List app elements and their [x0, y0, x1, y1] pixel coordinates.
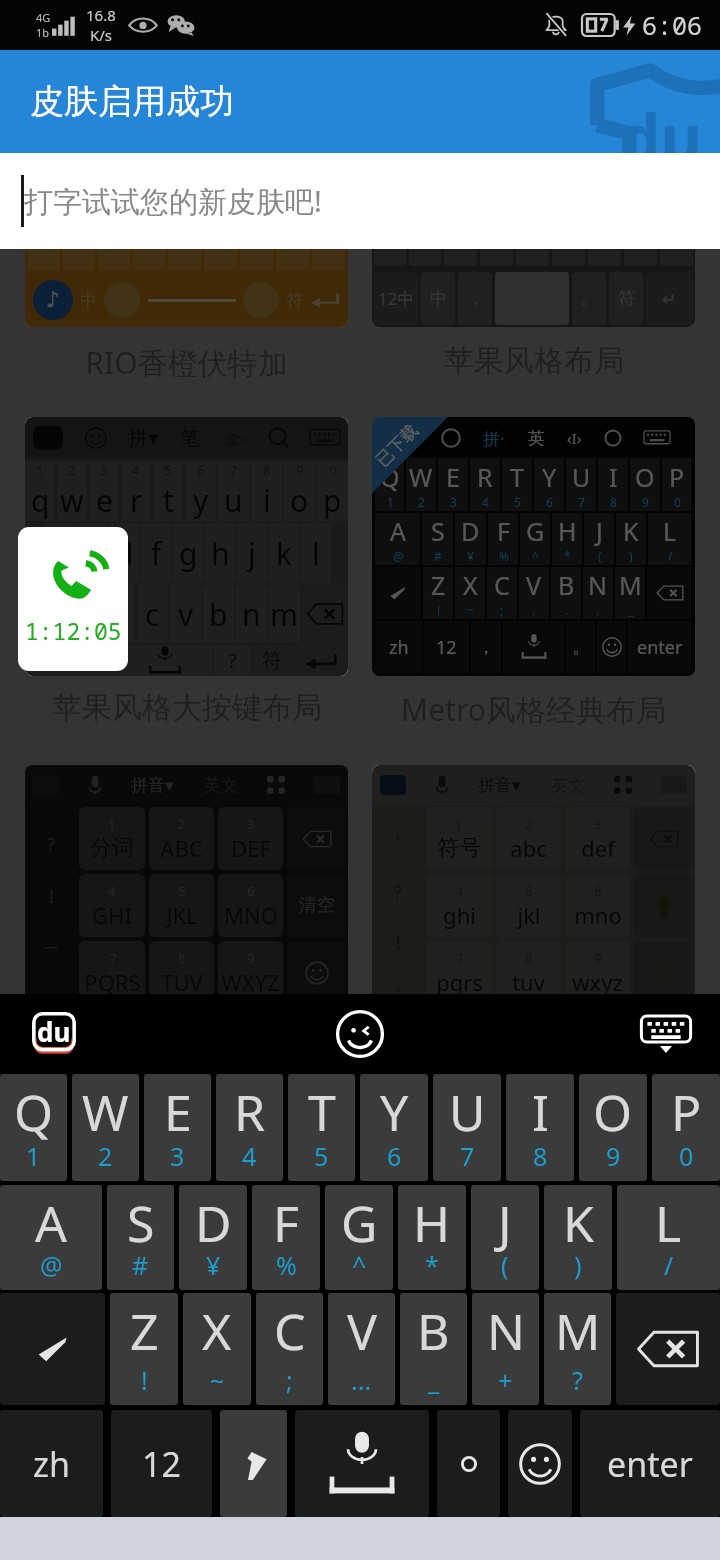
- button[interactable]: [220, 1410, 287, 1517]
- staticText: (: [501, 1248, 509, 1282]
- button[interactable]: A: [0, 1185, 102, 1290]
- button[interactable]: S: [107, 1185, 174, 1290]
- staticText: 拼音▾: [478, 775, 521, 796]
- button[interactable]: F: [252, 1185, 320, 1290]
- staticText: 拼音▾: [131, 775, 174, 796]
- staticText: R: [234, 1078, 266, 1146]
- staticText: zh: [389, 635, 409, 660]
- button[interactable]: 拼音▾: [372, 765, 695, 1024]
- staticText: 9: [296, 461, 304, 479]
- staticText: @: [40, 1248, 63, 1282]
- button[interactable]: R: [216, 1074, 283, 1181]
- staticText: H: [558, 514, 577, 548]
- button[interactable]: N: [472, 1293, 539, 1405]
- button[interactable]: D: [179, 1185, 247, 1290]
- button[interactable]: C: [256, 1293, 323, 1405]
- staticText: 4: [108, 882, 116, 900]
- button[interactable]: H: [398, 1185, 466, 1290]
- staticText: 4G: [36, 10, 51, 25]
- staticText: #: [132, 1248, 149, 1282]
- button[interactable]: 12中: [372, 236, 695, 327]
- staticText: !: [396, 930, 401, 955]
- staticText: C: [274, 1297, 306, 1365]
- staticText: JKL: [166, 900, 198, 930]
- staticText: 1:12:05: [25, 615, 122, 646]
- button[interactable]: O: [579, 1074, 647, 1181]
- button[interactable]: ♪: [25, 236, 348, 327]
- button[interactable]: G: [325, 1185, 393, 1290]
- button[interactable]: K: [544, 1185, 612, 1290]
- button[interactable]: Emoji: [332, 1006, 388, 1062]
- staticText: /: [668, 548, 673, 564]
- button[interactable]: Y: [360, 1074, 428, 1181]
- staticText: A: [35, 1189, 67, 1257]
- button[interactable]: X: [183, 1293, 251, 1405]
- staticText: l: [312, 533, 320, 574]
- button[interactable]: T: [288, 1074, 355, 1181]
- staticText: Z: [431, 568, 446, 602]
- staticText: mno: [574, 900, 622, 930]
- button[interactable]: V: [328, 1293, 395, 1405]
- staticText: Metro风格经典布局: [401, 689, 666, 730]
- staticText: —: [44, 937, 58, 956]
- button[interactable]: 拼·: [372, 417, 695, 676]
- staticText: J: [498, 1189, 512, 1257]
- staticText: 12: [142, 1441, 181, 1487]
- staticText: 。: [572, 636, 590, 659]
- staticText: 苹果风格大按键布局: [52, 689, 322, 727]
- button[interactable]: Hide keyboard: [636, 1009, 696, 1059]
- button[interactable]: U: [433, 1074, 501, 1181]
- button[interactable]: Z: [110, 1293, 178, 1405]
- button[interactable]: [616, 1293, 720, 1405]
- staticText: 符: [262, 648, 282, 673]
- button[interactable]: [0, 1293, 105, 1405]
- staticText: +: [498, 1363, 513, 1397]
- staticText: y: [193, 480, 209, 521]
- staticText: M: [619, 568, 642, 602]
- staticText: b: [209, 594, 228, 635]
- button[interactable]: [295, 1410, 429, 1517]
- button[interactable]: Baidu input menu: [30, 1011, 78, 1057]
- button[interactable]: L: [617, 1185, 720, 1290]
- staticText: def: [581, 833, 615, 863]
- button[interactable]: J: [471, 1185, 539, 1290]
- button[interactable]: Q: [0, 1074, 67, 1181]
- button[interactable]: 拼▾: [25, 417, 348, 676]
- staticText: I: [532, 1078, 549, 1146]
- staticText: ___: [44, 983, 58, 997]
- staticText: 2: [98, 1139, 113, 1173]
- button[interactable]: I: [506, 1074, 574, 1181]
- button[interactable]: [437, 1410, 500, 1517]
- staticText: %: [499, 548, 509, 564]
- button[interactable]: P: [652, 1074, 720, 1181]
- button[interactable]: 拼音▾: [25, 765, 348, 1024]
- staticText: 清空: [299, 894, 335, 917]
- staticText: 12: [436, 635, 457, 660]
- staticText: P: [669, 460, 685, 494]
- staticText: du: [37, 1014, 71, 1049]
- staticText: 打字试试您的新皮肤吧!: [24, 181, 322, 221]
- staticText: 12中: [378, 287, 415, 310]
- staticText: 3: [100, 461, 108, 479]
- button[interactable]: enter: [580, 1410, 720, 1517]
- staticText: 0: [674, 494, 681, 510]
- staticText: K: [563, 1189, 594, 1257]
- staticText: g: [179, 533, 198, 574]
- button[interactable]: [508, 1410, 572, 1517]
- staticText: 3: [247, 815, 255, 833]
- staticText: #: [434, 548, 442, 564]
- staticText: B: [417, 1297, 450, 1365]
- staticText: ♪: [46, 287, 61, 313]
- staticText: j: [248, 533, 256, 574]
- button[interactable]: 12: [111, 1410, 212, 1517]
- staticText: tuv: [512, 967, 545, 997]
- button[interactable]: M: [544, 1293, 611, 1405]
- button[interactable]: E: [144, 1074, 211, 1181]
- button[interactable]: B: [400, 1293, 467, 1405]
- button[interactable]: zh: [0, 1410, 103, 1517]
- staticText: 3: [170, 1139, 185, 1173]
- button[interactable]: Ongoing call 1:12:05: [18, 527, 128, 671]
- staticText: ~: [210, 1363, 225, 1397]
- button[interactable]: W: [72, 1074, 139, 1181]
